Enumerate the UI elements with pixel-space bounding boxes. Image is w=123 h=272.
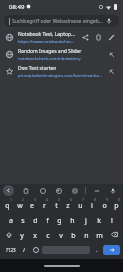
staticText: ?123 xyxy=(6,247,16,253)
staticText: g xyxy=(57,216,62,226)
staticText: notebookcheck.com/nbcbattery xyxy=(18,56,81,62)
button[interactable]: Random Images and Slider xyxy=(0,46,123,63)
button[interactable]: 9 xyxy=(98,197,110,212)
staticText: 08:49 xyxy=(9,3,25,11)
button[interactable]: Den Test starten xyxy=(0,63,123,80)
button[interactable]: Emoji xyxy=(37,185,48,196)
staticText: w xyxy=(17,201,23,211)
button[interactable]: 8 xyxy=(86,197,98,212)
button[interactable]: Edit xyxy=(105,31,118,44)
staticText: . xyxy=(96,246,98,253)
button[interactable]: Search xyxy=(103,245,120,255)
staticText: m xyxy=(96,231,103,241)
staticText: Den Test starten xyxy=(18,65,57,72)
staticText: 9 xyxy=(106,198,108,202)
staticText: k xyxy=(97,216,101,226)
staticText: z xyxy=(66,201,70,211)
button[interactable]: Change keyboard xyxy=(30,242,41,257)
staticText: Random Images and Slider xyxy=(18,48,82,55)
button[interactable]: Voice input xyxy=(107,185,118,196)
staticText: n xyxy=(84,231,89,241)
staticText: 1 xyxy=(10,198,12,202)
staticText: principledtechnologies.com/benchmarkxprt… xyxy=(18,73,102,79)
staticText: 4 xyxy=(46,198,48,202)
button[interactable]: v xyxy=(54,227,67,242)
button[interactable]: a xyxy=(5,212,17,227)
staticText: 6 xyxy=(70,198,72,202)
button[interactable]: m xyxy=(93,227,106,242)
staticText: 8 xyxy=(94,198,96,202)
staticText: a xyxy=(9,216,13,226)
button[interactable]: b xyxy=(67,227,80,242)
staticText: y xyxy=(20,231,24,241)
button[interactable]: ?123 xyxy=(2,242,19,257)
button[interactable]: h xyxy=(66,212,79,227)
button[interactable]: l xyxy=(105,212,118,227)
button[interactable]: Fill search field xyxy=(105,48,118,61)
button[interactable]: 5 xyxy=(50,197,62,212)
button[interactable]: s xyxy=(17,212,29,227)
staticText: v xyxy=(59,231,63,241)
button[interactable]: 1 xyxy=(1,197,14,212)
staticText: x xyxy=(33,231,37,241)
button[interactable]: Backspace xyxy=(106,227,122,242)
staticText: u xyxy=(78,201,83,211)
button[interactable]: 6 xyxy=(62,197,74,212)
button[interactable]: Notebook Test, Laptop Test u… xyxy=(0,29,123,46)
staticText: q xyxy=(5,201,10,211)
button[interactable]: k xyxy=(92,212,105,227)
staticText: 2 xyxy=(22,198,24,202)
button[interactable]: Suchbegriff oder Webadresse eingeben xyxy=(4,15,119,27)
button[interactable]: . xyxy=(91,242,102,257)
staticText: s xyxy=(21,216,25,226)
staticText: h xyxy=(70,216,75,226)
button[interactable]: 7 xyxy=(74,197,86,212)
button[interactable]: 2 xyxy=(14,197,26,212)
staticText: j xyxy=(85,216,87,226)
staticText: 5 xyxy=(58,198,60,202)
staticText: / xyxy=(23,246,26,253)
button[interactable]: Expand toolbar xyxy=(3,185,14,196)
staticText: 0 xyxy=(118,198,120,202)
staticText: l xyxy=(111,216,113,226)
button[interactable]: f xyxy=(41,212,53,227)
button[interactable]: x xyxy=(28,227,41,242)
staticText: f xyxy=(46,216,49,226)
button[interactable]: More options xyxy=(91,185,102,196)
button[interactable]: Translate xyxy=(69,185,80,196)
staticText: t xyxy=(55,201,58,211)
staticText: o xyxy=(102,201,107,211)
button[interactable]: Fill search field xyxy=(105,65,118,78)
button[interactable]: Copy to device xyxy=(92,31,105,44)
button[interactable]: c xyxy=(41,227,54,242)
button[interactable]: Voice search xyxy=(104,16,114,26)
button[interactable]: y xyxy=(16,227,28,242)
button[interactable]: g xyxy=(53,212,66,227)
staticText: Notebook Test, Laptop Test u… xyxy=(18,31,76,38)
staticText: p xyxy=(114,201,119,211)
button[interactable]: d xyxy=(29,212,41,227)
staticText: 3 xyxy=(34,198,36,202)
staticText: r xyxy=(43,201,46,211)
button[interactable]: 4 xyxy=(38,197,50,212)
button[interactable]: / xyxy=(19,242,30,257)
button[interactable]: n xyxy=(80,227,93,242)
button[interactable]: Share xyxy=(79,31,92,44)
button[interactable]: Clipboard xyxy=(20,185,31,196)
staticText: e xyxy=(30,201,34,211)
staticText: d xyxy=(33,216,38,226)
staticText: c xyxy=(46,231,50,241)
staticText: b xyxy=(71,231,76,241)
staticText: Suchbegriff oder Webadresse eingeben xyxy=(12,18,104,25)
button[interactable]: 0 xyxy=(110,197,122,212)
staticText: 7 xyxy=(82,198,84,202)
button[interactable]: 3 xyxy=(26,197,38,212)
button[interactable]: j xyxy=(79,212,92,227)
button[interactable]: Shift xyxy=(1,227,16,242)
button[interactable]: Stickers xyxy=(53,185,64,196)
staticText: https://www.notebookcheck.com/ xyxy=(18,39,76,45)
staticText: i xyxy=(91,201,93,211)
